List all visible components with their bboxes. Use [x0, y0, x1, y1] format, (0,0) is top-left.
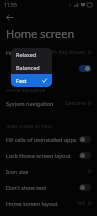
button[interactable]: Home screen layout [0, 195, 97, 211]
staticText: Fast [16, 77, 42, 84]
button[interactable]: Back [3, 11, 16, 24]
button[interactable]: System navigation [0, 95, 97, 111]
staticText: 4x5 [77, 200, 86, 207]
staticText: Gestures [65, 100, 86, 107]
staticText: SYSTEM NAVIGATION [6, 88, 46, 93]
staticText: Lock Home screen layout [6, 152, 79, 159]
button[interactable]: Don't show text [0, 179, 97, 195]
button[interactable]: Lock Home screen layout [0, 147, 97, 163]
button[interactable]: Fast [11, 74, 52, 87]
staticText: Home screen [6, 49, 46, 56]
staticText: Relaxed [16, 51, 47, 58]
button[interactable]: Icon size [0, 163, 97, 179]
staticText: Home screen [6, 26, 75, 41]
staticText: Don't show text [6, 184, 79, 191]
staticText: Balanced [16, 64, 47, 71]
button[interactable] [79, 184, 91, 191]
button[interactable] [79, 152, 91, 159]
button[interactable] [79, 136, 91, 143]
staticText: 11:55 [4, 2, 17, 9]
button[interactable] [79, 65, 91, 72]
button[interactable]: Relaxed [11, 48, 52, 61]
staticText: Icon size [6, 168, 88, 175]
button[interactable]: Balanced [11, 61, 52, 74]
staticText: Home screen layout [6, 200, 77, 207]
button[interactable]: Fill cells of uninstalled apps [0, 131, 97, 147]
button[interactable] [0, 60, 97, 76]
staticText: Fill cells of uninstalled apps [6, 136, 79, 143]
staticText: System navigation [6, 100, 65, 107]
button[interactable]: Home screen [0, 44, 97, 60]
staticText: HOME SCREEN SETTINGS [6, 124, 53, 129]
staticText: With App drawer [46, 49, 86, 56]
